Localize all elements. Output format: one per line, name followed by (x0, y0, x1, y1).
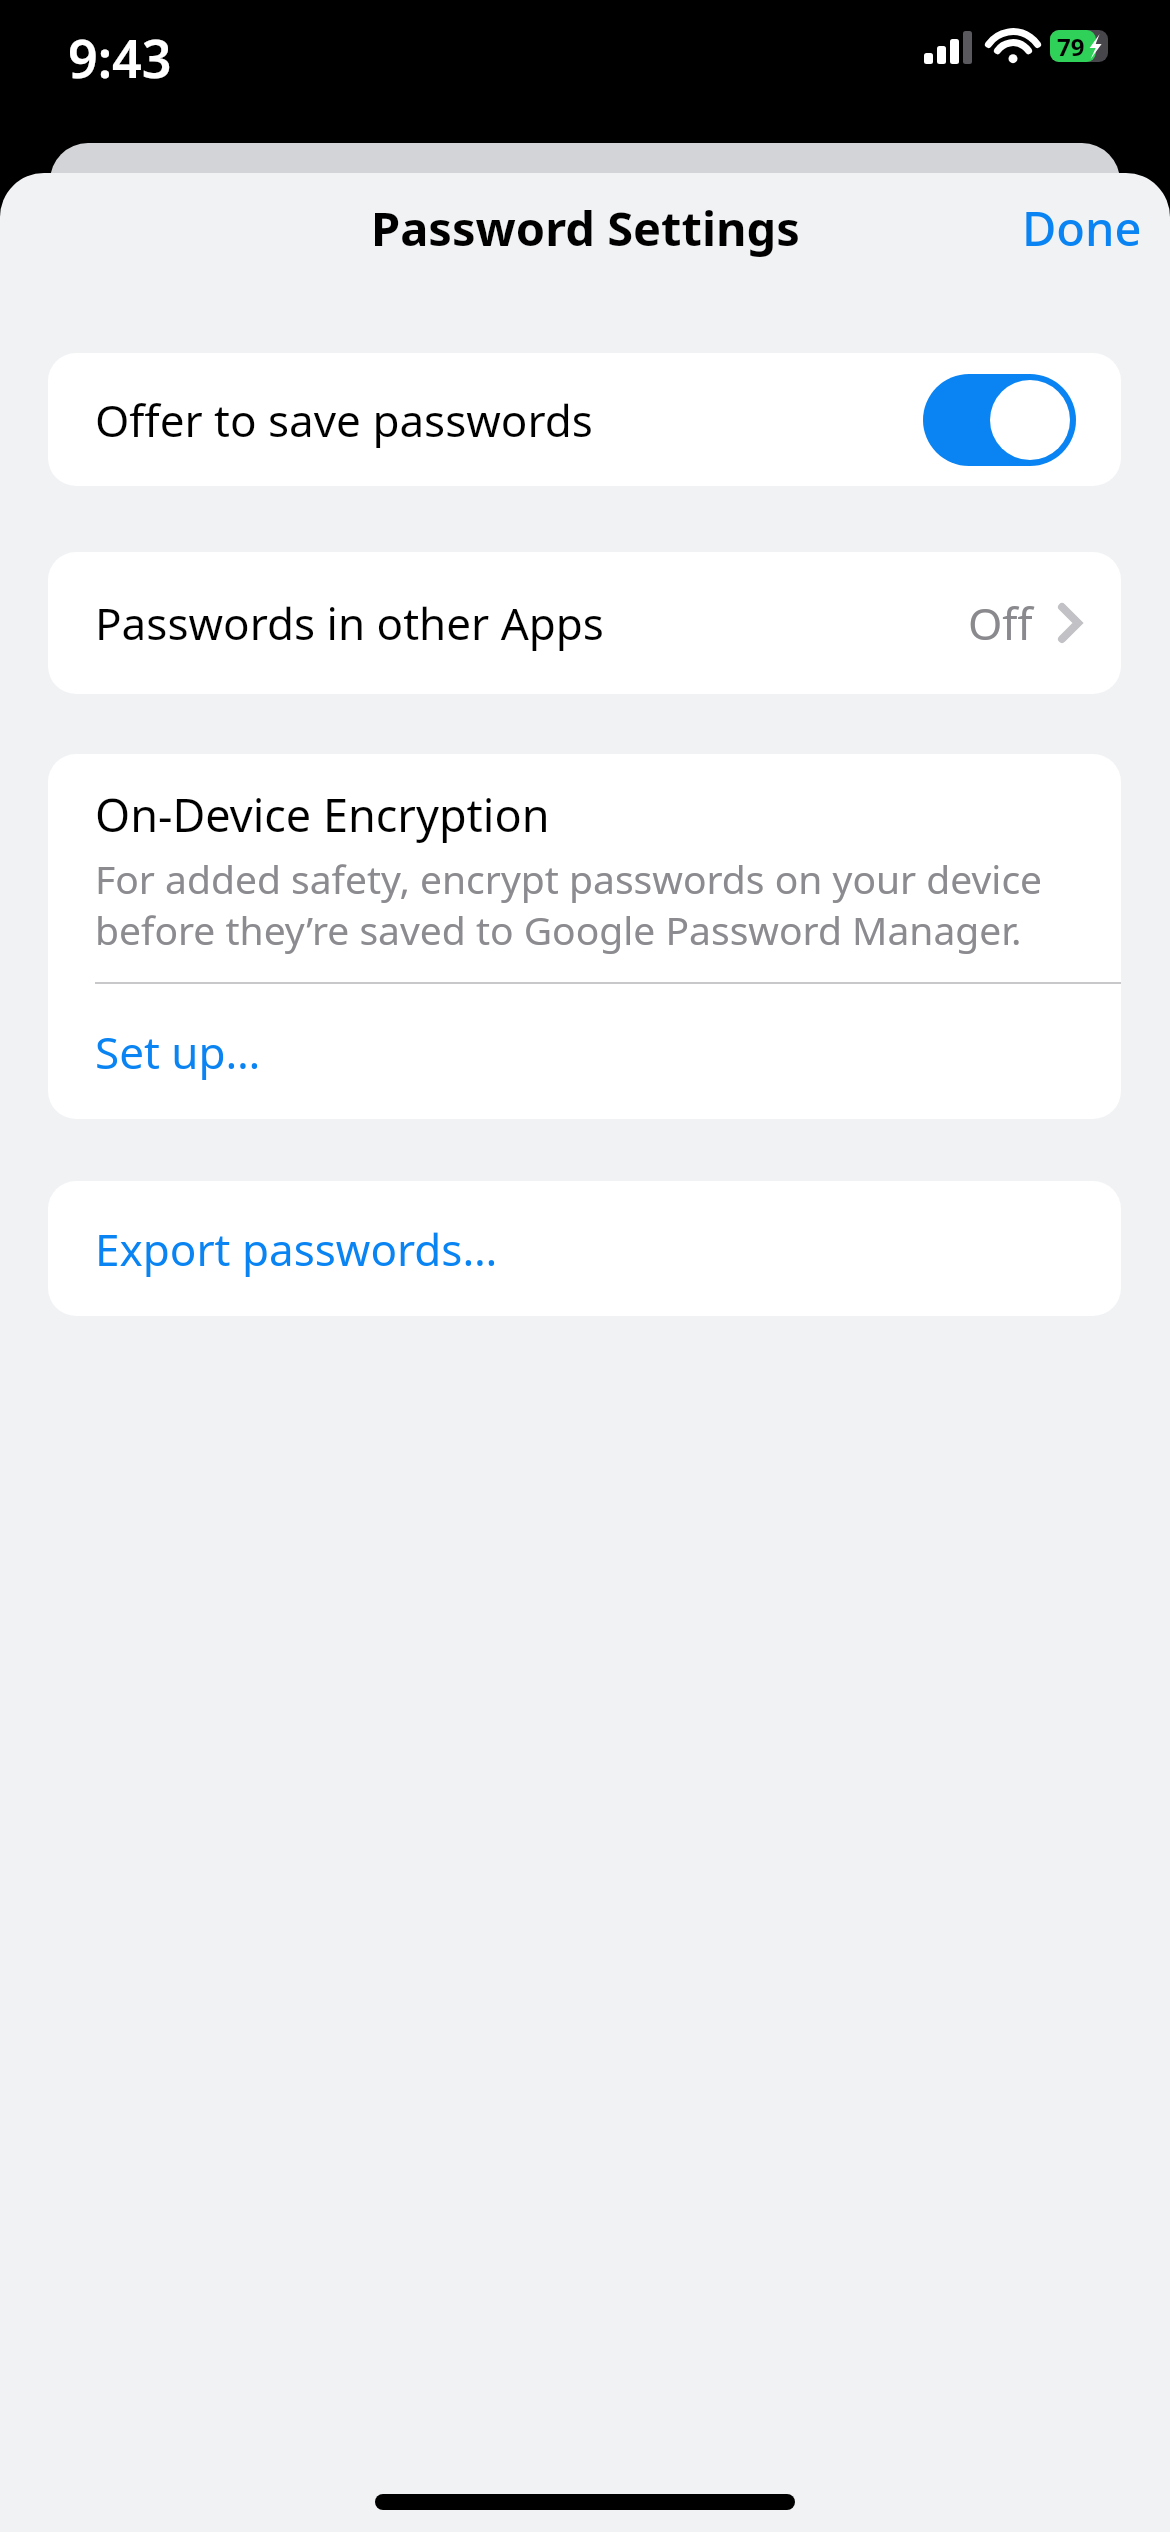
button[interactable]: Done (994, 180, 1170, 276)
staticText: Export passwords… (95, 1219, 498, 1279)
staticText: Off (968, 593, 1033, 653)
button[interactable]: Passwords in other Apps (48, 552, 1121, 694)
button[interactable]: Export passwords… (48, 1181, 1121, 1316)
staticText: 79 (1057, 30, 1085, 62)
button[interactable]: Set up… (48, 984, 1121, 1119)
button[interactable]: Offer to save passwords toggle (923, 374, 1076, 466)
staticText: On-Device Encryption (95, 784, 550, 845)
staticText: Done (1022, 196, 1142, 260)
staticText: Passwords in other Apps (95, 593, 604, 653)
staticText: Set up… (95, 1022, 261, 1082)
button[interactable]: Offer to save passwords (48, 353, 1121, 486)
staticText: 9:43 (68, 22, 172, 93)
staticText: Offer to save passwords (95, 390, 593, 450)
staticText: Password Settings (371, 196, 800, 260)
staticText: For added safety, encrypt passwords on y… (95, 852, 1076, 956)
